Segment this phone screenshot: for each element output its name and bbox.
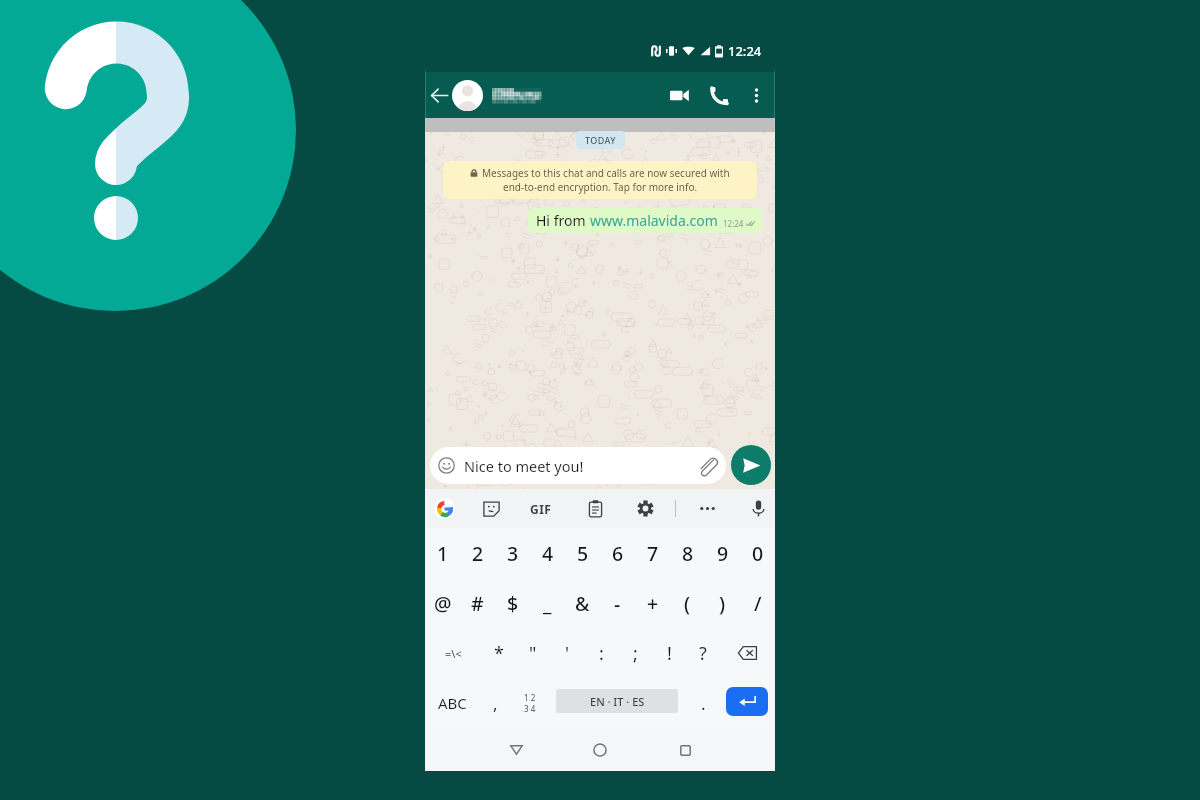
button[interactable]: 4 xyxy=(530,528,565,578)
button[interactable]: + xyxy=(635,578,670,628)
button[interactable]: 5 xyxy=(565,528,600,578)
button[interactable]: Send xyxy=(731,445,771,485)
button[interactable]: $ xyxy=(495,578,530,628)
button[interactable]: _ xyxy=(530,578,565,628)
button[interactable]: # xyxy=(460,578,495,628)
staticText: & xyxy=(575,590,590,617)
button[interactable]: Settings xyxy=(636,499,655,518)
button[interactable]: Contact photo xyxy=(452,80,483,111)
staticText: ; xyxy=(633,641,638,666)
button[interactable]: Emoji xyxy=(430,447,726,484)
button[interactable]: Messages to this chat and calls are now … xyxy=(443,161,757,199)
staticText: 0 xyxy=(752,540,764,567)
button[interactable]: 1 xyxy=(425,528,460,578)
button[interactable]: Video call xyxy=(664,80,694,110)
staticText: - xyxy=(614,590,621,617)
button[interactable]: Call xyxy=(704,80,734,110)
button[interactable]: 0 xyxy=(740,528,775,578)
staticText: 3 4 xyxy=(524,703,536,714)
button[interactable]: ( xyxy=(670,578,705,628)
staticText: ! xyxy=(667,641,672,666)
staticText: 5 xyxy=(577,540,589,567)
button[interactable]: More options xyxy=(741,80,771,110)
button[interactable]: & xyxy=(565,578,600,628)
button[interactable]: Stickers xyxy=(482,499,501,518)
button[interactable]: Clipboard xyxy=(586,499,605,518)
button[interactable]: 2 xyxy=(460,528,495,578)
button[interactable]: 7 xyxy=(635,528,670,578)
staticText: " xyxy=(529,641,537,666)
button[interactable]: Google xyxy=(434,498,455,519)
button[interactable]: Recents xyxy=(670,735,700,765)
button[interactable]: ' xyxy=(550,628,584,678)
button[interactable]: * xyxy=(481,628,516,678)
staticText: ABC xyxy=(438,693,467,713)
staticText: ( xyxy=(684,590,691,617)
button[interactable]: ! xyxy=(652,628,686,678)
staticText: 4 xyxy=(542,540,554,567)
button[interactable]: 1 2 xyxy=(515,678,545,728)
staticText: 3 xyxy=(507,540,519,567)
button[interactable]: =\< xyxy=(425,628,481,678)
staticText: =\< xyxy=(445,646,462,661)
staticText: end-to-end encryption. Tap for more info… xyxy=(503,180,698,194)
button[interactable]: ; xyxy=(618,628,652,678)
staticText: ) xyxy=(719,590,726,617)
staticText: * xyxy=(494,641,504,666)
staticText: 2 xyxy=(472,540,484,567)
button[interactable]: More xyxy=(698,499,717,518)
staticText: 12:24 xyxy=(723,218,744,229)
button[interactable]: EN · IT · ES xyxy=(556,689,678,713)
button[interactable]: . xyxy=(689,678,717,728)
button[interactable]: Enter xyxy=(726,687,768,716)
staticText: 6 xyxy=(612,540,624,567)
staticText: $ xyxy=(507,590,519,617)
button[interactable]: Backspace xyxy=(720,628,775,678)
button[interactable]: , xyxy=(481,678,509,728)
staticText: / xyxy=(754,590,762,617)
button[interactable]: / xyxy=(740,578,775,628)
button[interactable]: Home xyxy=(585,735,615,765)
staticText: 8 xyxy=(682,540,694,567)
button[interactable]: ? xyxy=(686,628,720,678)
staticText: GIF xyxy=(530,501,552,517)
button[interactable]: 3 xyxy=(495,528,530,578)
staticText: EN · IT · ES xyxy=(590,694,645,709)
staticText: 1 xyxy=(437,540,449,567)
button[interactable]: 6 xyxy=(600,528,635,578)
staticText: 7 xyxy=(647,540,659,567)
staticText: _ xyxy=(543,590,552,617)
button[interactable]: Voice input xyxy=(749,499,768,518)
staticText: ? xyxy=(699,641,707,666)
staticText: + xyxy=(647,590,659,617)
button[interactable]: : xyxy=(584,628,618,678)
button[interactable]: @ xyxy=(425,578,460,628)
button[interactable]: Back xyxy=(501,735,531,765)
staticText: 9 xyxy=(717,540,729,567)
button[interactable]: 9 xyxy=(705,528,740,578)
staticText: www.malavida.com xyxy=(590,211,718,230)
staticText: Messages to this chat and calls are now … xyxy=(482,166,730,180)
staticText: ' xyxy=(565,641,570,666)
staticText: , xyxy=(493,692,498,715)
staticText: Hi from xyxy=(536,211,590,230)
staticText: Nice to meet you! xyxy=(464,456,584,476)
button[interactable]: TODAY xyxy=(576,131,625,149)
other: Emoji xyxy=(438,457,455,474)
button[interactable]: - xyxy=(600,578,635,628)
staticText: . xyxy=(701,692,706,715)
button[interactable]: Attach xyxy=(697,455,718,476)
button[interactable]: 8 xyxy=(670,528,705,578)
button[interactable]: ABC xyxy=(428,678,476,728)
staticText: 12:24 xyxy=(728,42,762,60)
staticText: @ xyxy=(434,590,452,617)
staticText: # xyxy=(471,590,484,617)
button[interactable]: Back xyxy=(426,82,452,108)
button[interactable]: ) xyxy=(705,578,740,628)
staticText: : xyxy=(599,641,604,666)
button[interactable]: GIF xyxy=(530,501,552,517)
staticText: 1 2 xyxy=(524,692,536,703)
button[interactable]: " xyxy=(516,628,550,678)
staticText: TODAY xyxy=(585,134,616,146)
